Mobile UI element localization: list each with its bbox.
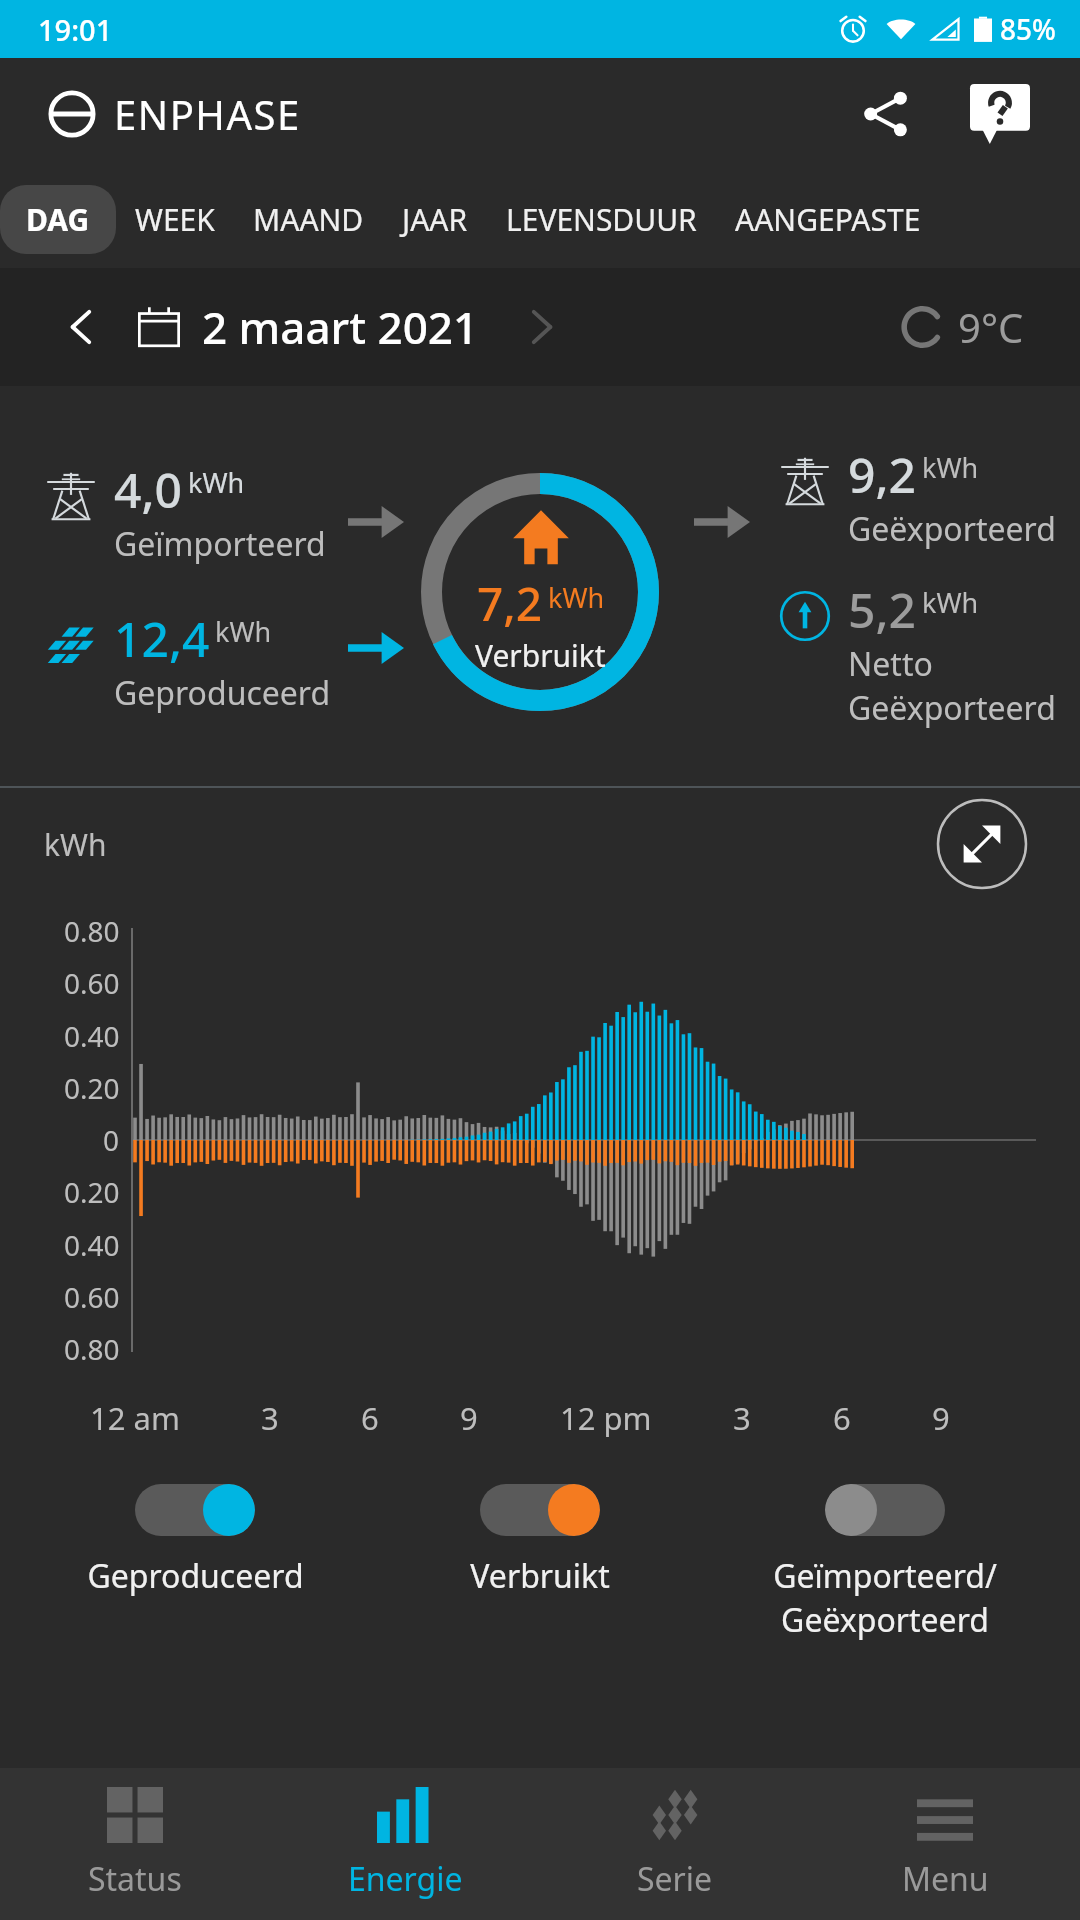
staticText: Geïmporteerd bbox=[114, 522, 326, 566]
staticText: Geëxporteerd bbox=[848, 507, 1056, 551]
staticText: 12 pm bbox=[560, 1397, 652, 1439]
button[interactable]: Energie bbox=[270, 1768, 540, 1920]
staticText: WEEK bbox=[135, 199, 215, 240]
staticText: ENPHASE bbox=[114, 87, 301, 141]
staticText: Energie bbox=[348, 1857, 463, 1901]
staticText: 2 maart 2021 bbox=[202, 297, 479, 357]
button[interactable]: AANGEPASTE bbox=[716, 185, 940, 254]
staticText: 0 bbox=[103, 1121, 120, 1159]
staticText: 0.60 bbox=[64, 964, 120, 1002]
staticText: 85% bbox=[1000, 10, 1056, 48]
staticText: 3 bbox=[733, 1397, 751, 1439]
staticText: kWh bbox=[922, 449, 979, 486]
staticText: AANGEPASTE bbox=[735, 199, 921, 240]
staticText: Verbruikt bbox=[475, 635, 606, 676]
staticText: kWh bbox=[188, 464, 245, 501]
button[interactable]: JAAR bbox=[383, 185, 487, 254]
staticText: DAG bbox=[26, 199, 90, 240]
staticText: 5,2 bbox=[848, 577, 917, 642]
staticText: 3 bbox=[261, 1397, 279, 1439]
staticText: kWh bbox=[44, 824, 107, 865]
staticText: Geëxporteerd bbox=[848, 686, 1056, 730]
button[interactable]: Status bbox=[0, 1768, 270, 1920]
staticText: JAAR bbox=[402, 199, 468, 240]
button[interactable]: Expand chart bbox=[936, 798, 1028, 890]
staticText: 0.20 bbox=[64, 1173, 120, 1211]
staticText: 7,2 bbox=[477, 572, 543, 635]
button[interactable]: Share bbox=[850, 78, 922, 150]
button[interactable]: Geproduceerd bbox=[45, 1478, 345, 1604]
button[interactable]: LEVENSDUUR bbox=[487, 185, 716, 254]
button[interactable]: DAG bbox=[0, 185, 116, 254]
staticText: 12,4 bbox=[114, 606, 210, 671]
staticText: 12 am bbox=[90, 1397, 180, 1439]
button[interactable]: MAAND bbox=[234, 185, 383, 254]
staticText: 9 bbox=[460, 1397, 478, 1439]
staticText: Menu bbox=[902, 1857, 989, 1901]
button[interactable]: Geïmporteerd/ Geëxporteerd bbox=[735, 1478, 1035, 1648]
button[interactable]: Menu bbox=[810, 1768, 1080, 1920]
staticText: 6 bbox=[833, 1397, 851, 1439]
staticText: 0.80 bbox=[64, 912, 120, 950]
staticText: 19:01 bbox=[38, 10, 113, 49]
staticText: Geproduceerd bbox=[87, 1554, 304, 1598]
staticText: LEVENSDUUR bbox=[506, 199, 697, 240]
staticText: Serie bbox=[637, 1857, 713, 1901]
button[interactable]: Previous day bbox=[52, 297, 112, 357]
staticText: Netto bbox=[848, 642, 933, 686]
staticText: 9,2 bbox=[848, 442, 917, 507]
staticText: 0.40 bbox=[64, 1226, 120, 1264]
staticText: kWh bbox=[548, 579, 605, 616]
staticText: Geproduceerd bbox=[114, 671, 331, 715]
button[interactable]: Help bbox=[964, 78, 1036, 150]
staticText: 4,0 bbox=[114, 457, 183, 522]
button[interactable]: Verbruikt bbox=[390, 1478, 690, 1604]
staticText: MAAND bbox=[253, 199, 364, 240]
button[interactable]: Serie bbox=[540, 1768, 810, 1920]
staticText: 0.40 bbox=[64, 1017, 120, 1055]
staticText: 6 bbox=[361, 1397, 379, 1439]
staticText: 9°C bbox=[958, 300, 1024, 354]
staticText: 0.80 bbox=[64, 1330, 120, 1368]
staticText: 0.60 bbox=[64, 1278, 120, 1316]
staticText: 0.20 bbox=[64, 1069, 120, 1107]
staticText: Status bbox=[88, 1857, 182, 1901]
staticText: Geïmporteerd/ Geëxporteerd bbox=[773, 1554, 997, 1642]
staticText: kWh bbox=[215, 613, 272, 650]
button[interactable]: Next day bbox=[511, 297, 571, 357]
staticText: kWh bbox=[922, 584, 979, 621]
staticText: Verbruikt bbox=[470, 1554, 610, 1598]
button[interactable]: WEEK bbox=[116, 185, 234, 254]
staticText: 9 bbox=[932, 1397, 950, 1439]
